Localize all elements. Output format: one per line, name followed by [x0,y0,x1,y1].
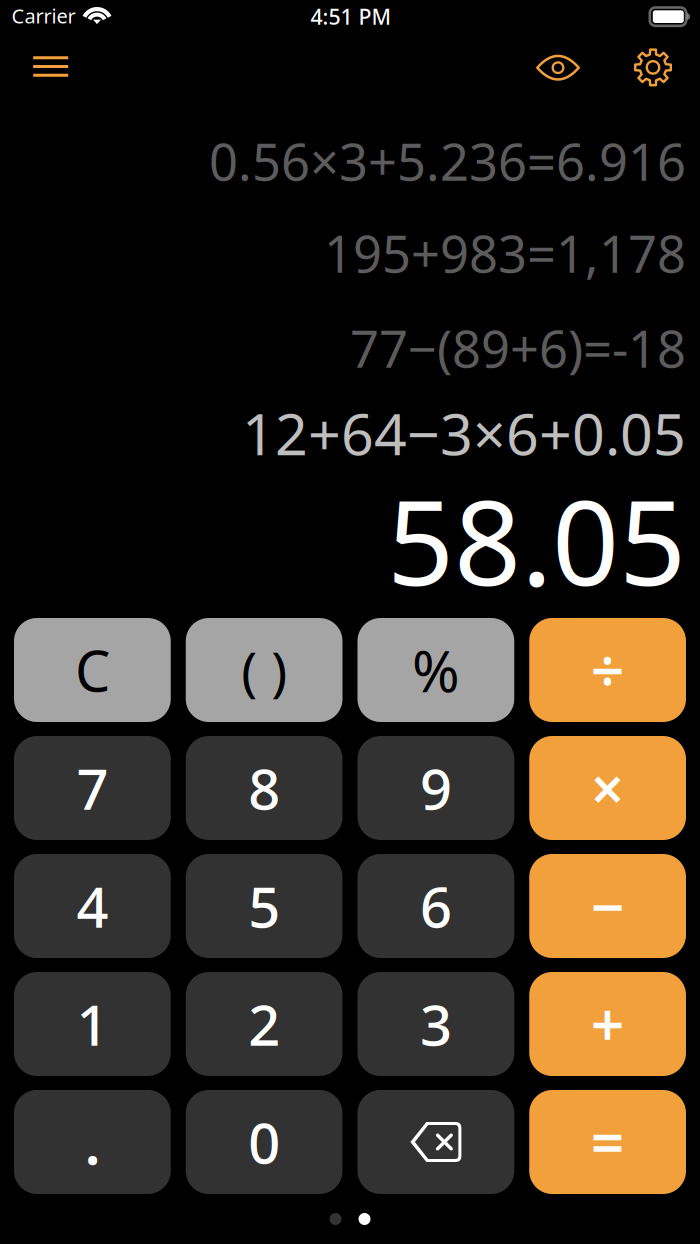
staticText: 77−(89+6)=-18 [350,314,686,382]
button[interactable]: × [529,736,686,840]
staticText: 9 [420,751,452,825]
button[interactable]: Menu [13,38,89,94]
button[interactable]: 2 [186,972,343,1076]
button[interactable]: . [14,1090,171,1194]
staticText: 0 [248,1105,280,1179]
button[interactable]: + [529,972,686,1076]
staticText: % [412,632,460,708]
button[interactable]: 4 [14,854,171,958]
staticText: ( ) [241,635,287,705]
staticText: 0.56×3+5.236=6.916 [209,127,686,195]
button[interactable]: Settings [615,39,691,95]
staticText: Carrier [12,2,76,29]
staticText: 7 [76,751,108,825]
button[interactable]: 0 [186,1090,343,1194]
button[interactable] [357,1090,514,1194]
button[interactable]: ( ) [186,618,343,722]
staticText: + [591,985,625,1063]
staticText: . [84,1103,100,1181]
button[interactable]: % [357,618,514,722]
button[interactable]: − [529,854,686,958]
staticText: 58.05 [387,462,686,618]
button[interactable]: 8 [186,736,343,840]
staticText: × [591,749,625,827]
button[interactable]: ÷ [529,618,686,722]
staticText: ÷ [591,631,625,709]
button[interactable]: C [14,618,171,722]
button[interactable]: = [529,1090,686,1194]
staticText: 4 [76,869,108,943]
staticText: 195+983=1,178 [324,219,686,287]
button[interactable]: 5 [186,854,343,958]
button[interactable]: 6 [357,854,514,958]
staticText: 6 [420,869,452,943]
button[interactable]: 7 [14,736,171,840]
staticText: 4:51 PM [311,2,392,31]
staticText: 2 [248,987,280,1061]
button[interactable]: History [520,40,596,96]
staticText: 5 [248,869,280,943]
staticText: 3 [420,987,452,1061]
button[interactable]: 3 [357,972,514,1076]
staticText: = [591,1103,625,1181]
button[interactable]: 9 [357,736,514,840]
staticText: 12+64−3×6+0.05 [242,395,686,471]
staticText: − [591,867,625,945]
button[interactable]: 1 [14,972,171,1076]
staticText: C [75,633,110,707]
staticText: 8 [248,751,280,825]
staticText: 1 [76,987,108,1061]
